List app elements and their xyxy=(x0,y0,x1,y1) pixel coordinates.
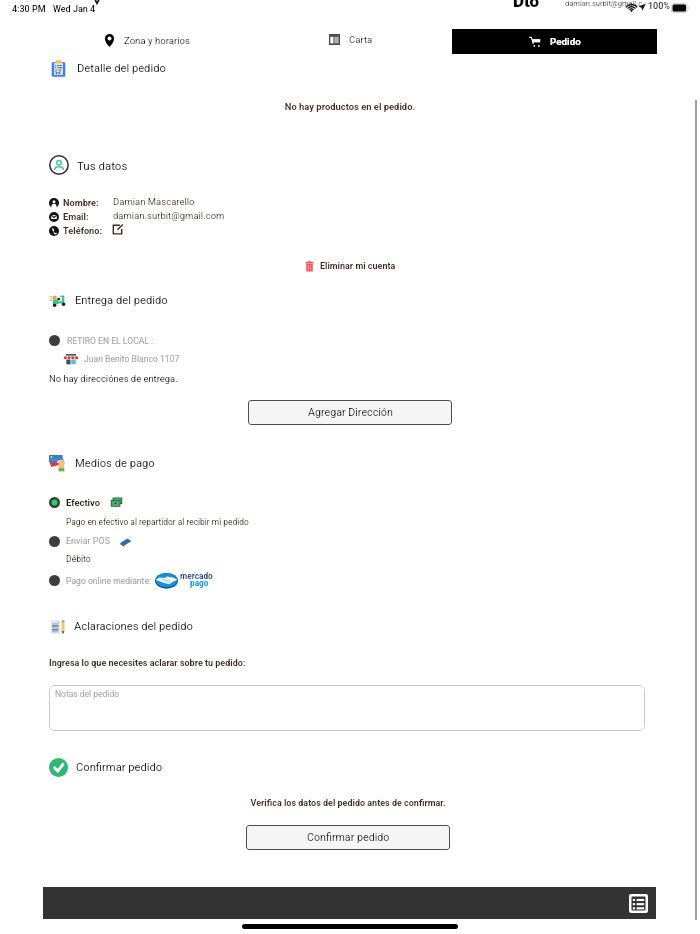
staticText: RETIRO EN EL LOCAL : xyxy=(67,336,154,346)
staticText: Pedido xyxy=(550,36,581,47)
staticText: damian.surbit@gmail.com xyxy=(113,210,225,221)
staticText: Verifica los datos del pedido antes de c… xyxy=(0,798,696,809)
staticText: Enviar POS xyxy=(66,536,111,547)
staticText: Débito xyxy=(66,554,91,564)
staticText: damian.surbit@gmail.c xyxy=(565,0,643,8)
staticText: Detalle del pedido xyxy=(77,62,166,75)
staticText: Pago online mediante: xyxy=(66,576,152,586)
button[interactable]: Confirmar pedido xyxy=(246,825,450,850)
staticText: No hay direcciónes de entrega. xyxy=(49,373,178,384)
staticText: Ingresa lo que necesites aclarar sobre t… xyxy=(49,658,246,669)
staticText: No hay productos en el pedido. xyxy=(0,101,700,112)
staticText: Efectivo xyxy=(66,497,101,508)
button[interactable]: Enviar POS xyxy=(49,533,135,549)
button[interactable]: Zona y horarios xyxy=(104,34,190,47)
staticText: Zona y horarios xyxy=(124,35,190,46)
button[interactable]: Efectivo xyxy=(49,496,123,509)
staticText: Carta xyxy=(349,34,373,45)
staticText: Agregar Dirección xyxy=(308,406,393,419)
button[interactable]: Pago online mediante: xyxy=(49,570,217,591)
staticText: Email: xyxy=(63,211,89,222)
staticText: Eliminar mi cuenta xyxy=(320,261,396,272)
staticText: Aclaraciones del pedido xyxy=(74,620,193,633)
button[interactable]: Agregar Dirección xyxy=(248,400,452,425)
staticText: 100% xyxy=(648,1,670,12)
button[interactable]: Notas del pedido xyxy=(49,685,645,731)
staticText: Damian Mascarello xyxy=(113,196,195,207)
staticText: Wed Jan 4 xyxy=(53,4,96,15)
staticText: Confirmar pedido xyxy=(307,831,390,844)
staticText: Medios de pago xyxy=(75,457,155,470)
staticText: Entrega del pedido xyxy=(75,294,168,307)
staticText: mercado xyxy=(180,571,213,581)
staticText: Notas del pedido xyxy=(55,689,120,699)
button[interactable]: Pedido xyxy=(452,29,657,54)
button[interactable]: Eliminar mi cuenta xyxy=(304,261,396,272)
staticText: Confirmar pedido xyxy=(76,761,163,774)
staticText: pago xyxy=(190,578,209,588)
staticText: 4:30 PM xyxy=(12,4,46,15)
staticText: Tus datos xyxy=(77,159,128,172)
button[interactable]: Carta xyxy=(329,34,373,45)
staticText: Pago en efectivo al repartidor al recibi… xyxy=(66,517,249,527)
button[interactable]: Menu xyxy=(629,894,648,913)
staticText: Juan Benito Blanco 1107 xyxy=(84,354,180,364)
staticText: Nombre: xyxy=(63,197,99,208)
staticText: Dto xyxy=(513,0,540,9)
staticText: Teléfono: xyxy=(63,225,103,236)
